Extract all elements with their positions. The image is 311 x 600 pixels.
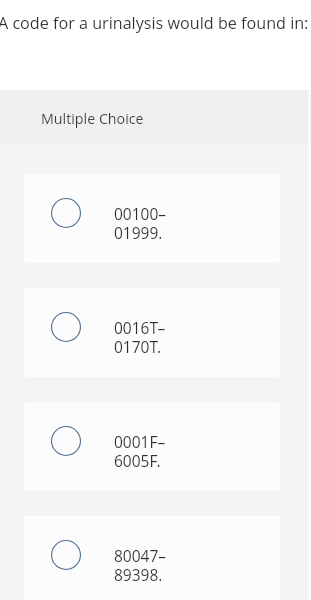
other: Select answer xyxy=(51,198,81,228)
staticText: 0001F– 6005F. xyxy=(114,431,166,471)
staticText: 0016T– 0170T. xyxy=(114,317,166,357)
button[interactable]: Select answer xyxy=(24,174,280,263)
button[interactable]: Select answer xyxy=(24,402,280,491)
staticText: 00100– 01999. xyxy=(114,203,167,243)
staticText: A code for a urinalysis would be found i… xyxy=(0,12,309,34)
button[interactable]: Select answer xyxy=(24,288,280,377)
staticText: Multiple Choice xyxy=(41,109,144,128)
button[interactable]: Select answer xyxy=(24,516,280,600)
other: Select answer xyxy=(51,426,81,456)
staticText: 80047– 89398. xyxy=(114,545,167,585)
other: Select answer xyxy=(51,312,81,342)
other: Select answer xyxy=(51,540,81,570)
